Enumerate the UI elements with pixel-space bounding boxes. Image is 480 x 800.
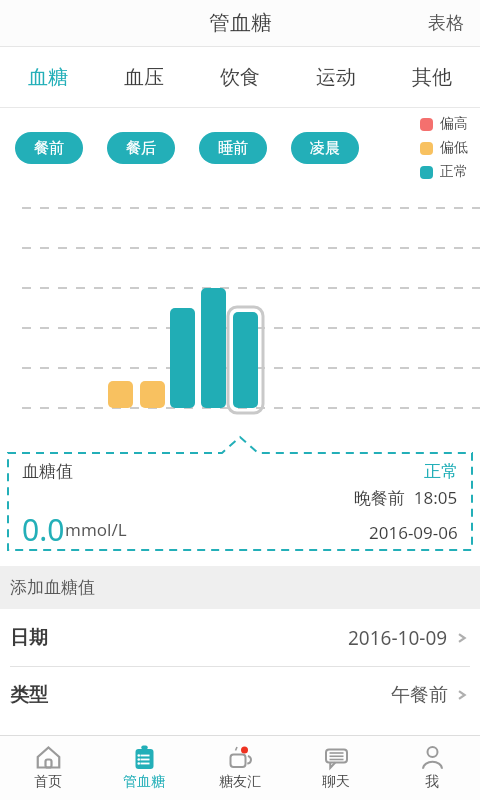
button[interactable]: 类型 bbox=[0, 667, 480, 711]
staticText: 管血糖 bbox=[123, 773, 165, 791]
button[interactable]: 餐前 bbox=[15, 132, 83, 164]
staticText: 2016-10-09 bbox=[348, 625, 448, 651]
staticText: 聊天 bbox=[322, 773, 350, 791]
staticText: 2016-09-06 bbox=[369, 521, 458, 544]
staticText: 偏高 bbox=[440, 115, 468, 133]
button[interactable]: 表格 bbox=[412, 2, 480, 45]
staticText: 正常 bbox=[440, 163, 468, 181]
button[interactable]: 餐后 bbox=[107, 132, 175, 164]
staticText: 偏低 bbox=[440, 139, 468, 157]
staticText: 类型 bbox=[10, 683, 48, 707]
staticText: 午餐前 bbox=[391, 683, 448, 707]
button[interactable]: 其他 bbox=[384, 47, 480, 107]
button[interactable]: 管血糖 bbox=[96, 736, 192, 800]
staticText: 我 bbox=[425, 773, 439, 791]
button[interactable]: 饮食 bbox=[192, 47, 288, 107]
staticText: 餐后 bbox=[126, 139, 156, 158]
other: 糖友汇 bbox=[228, 745, 253, 770]
staticText: 日期 bbox=[10, 626, 48, 650]
staticText: 表格 bbox=[428, 12, 464, 35]
staticText: 糖友汇 bbox=[219, 773, 261, 791]
other: 我 bbox=[420, 745, 445, 770]
button[interactable]: 运动 bbox=[288, 47, 384, 107]
staticText: 首页 bbox=[34, 773, 62, 791]
button[interactable]: 我 bbox=[384, 736, 480, 800]
staticText: 晚餐前 18:05 bbox=[354, 486, 458, 509]
staticText: 正常 bbox=[424, 461, 458, 482]
staticText: 0.0 bbox=[22, 509, 65, 544]
staticText: 血糖 bbox=[28, 65, 68, 90]
staticText: 运动 bbox=[316, 65, 356, 90]
other: 首页 bbox=[36, 745, 61, 770]
button[interactable]: 聊天 bbox=[288, 736, 384, 800]
button[interactable]: 睡前 bbox=[199, 132, 267, 164]
staticText: 血糖值 bbox=[22, 461, 73, 482]
staticText: 饮食 bbox=[220, 65, 260, 90]
other: 聊天 bbox=[324, 745, 349, 770]
button[interactable]: 首页 bbox=[0, 736, 96, 800]
staticText: 血压 bbox=[124, 65, 164, 90]
staticText: mmol/L bbox=[65, 518, 127, 541]
staticText: 其他 bbox=[412, 65, 452, 90]
staticText: 餐前 bbox=[34, 139, 64, 158]
button[interactable]: 血压 bbox=[96, 47, 192, 107]
button[interactable]: 凌晨 bbox=[291, 132, 359, 164]
staticText: 添加血糖值 bbox=[10, 577, 95, 598]
staticText: 凌晨 bbox=[310, 139, 340, 158]
button[interactable]: 日期 bbox=[0, 609, 480, 666]
staticText: 管血糖 bbox=[209, 10, 272, 36]
button[interactable]: 糖友汇 bbox=[192, 736, 288, 800]
other: 管血糖 bbox=[132, 745, 157, 770]
button[interactable]: 血糖 bbox=[0, 47, 96, 107]
staticText: 睡前 bbox=[218, 139, 248, 158]
